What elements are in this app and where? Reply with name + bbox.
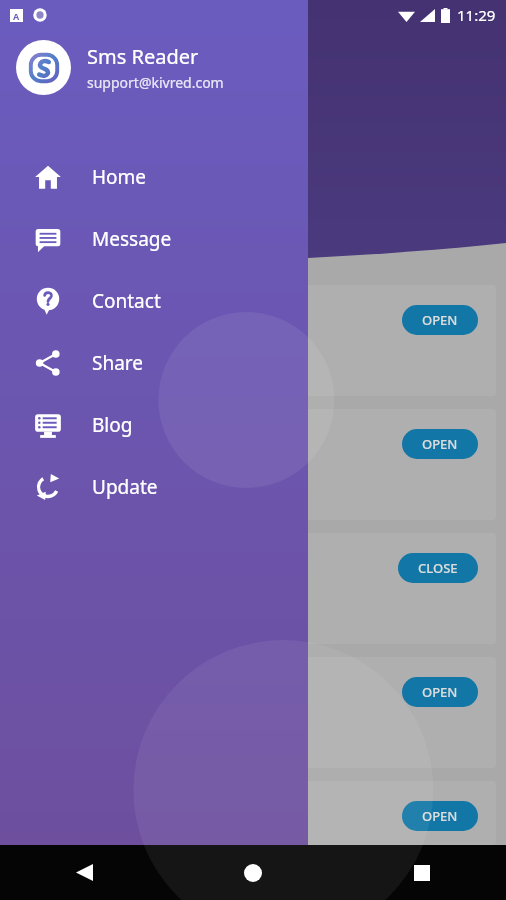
button[interactable]: OPEN	[10, 285, 496, 396]
button[interactable]: Home	[0, 146, 308, 208]
button[interactable]: Recents	[337, 845, 506, 900]
staticText: 11:29	[457, 5, 496, 25]
button[interactable]: OPEN	[402, 801, 478, 831]
button[interactable]: Message	[0, 208, 308, 270]
staticText: Message	[92, 226, 172, 252]
button[interactable]: OPEN	[10, 657, 496, 768]
button[interactable]: OPEN	[402, 305, 478, 335]
button[interactable]: Update	[0, 456, 308, 518]
button[interactable]: CLOSE	[10, 533, 496, 644]
staticText: Contact	[92, 288, 161, 314]
staticText: Home	[92, 164, 147, 190]
button[interactable]: CLOSE	[398, 553, 478, 583]
button[interactable]: OPEN	[402, 429, 478, 459]
button[interactable]: Home	[168, 845, 337, 900]
button[interactable]: Share	[0, 332, 308, 394]
staticText: Sms Reader	[24, 86, 147, 116]
staticText: CLOSE	[418, 559, 458, 577]
button[interactable]: Back	[0, 845, 168, 900]
staticText: A	[13, 10, 20, 22]
button[interactable]: Contact	[0, 270, 308, 332]
staticText: Blog	[92, 412, 133, 438]
staticText: OPEN	[422, 311, 458, 329]
staticText: OPEN	[422, 807, 458, 825]
staticText: OPEN	[422, 435, 458, 453]
staticText: support@kivred.com	[87, 73, 224, 92]
staticText: Sms Reader	[87, 43, 199, 70]
staticText: Share	[92, 350, 144, 376]
staticText: 25	[24, 138, 66, 187]
button[interactable]: Blog	[0, 394, 308, 456]
button[interactable]: OPEN	[10, 409, 496, 520]
staticText: Update	[92, 474, 158, 500]
button[interactable]: OPEN	[402, 677, 478, 707]
staticText: OPEN	[422, 683, 458, 701]
button[interactable]: OPEN	[10, 781, 496, 845]
